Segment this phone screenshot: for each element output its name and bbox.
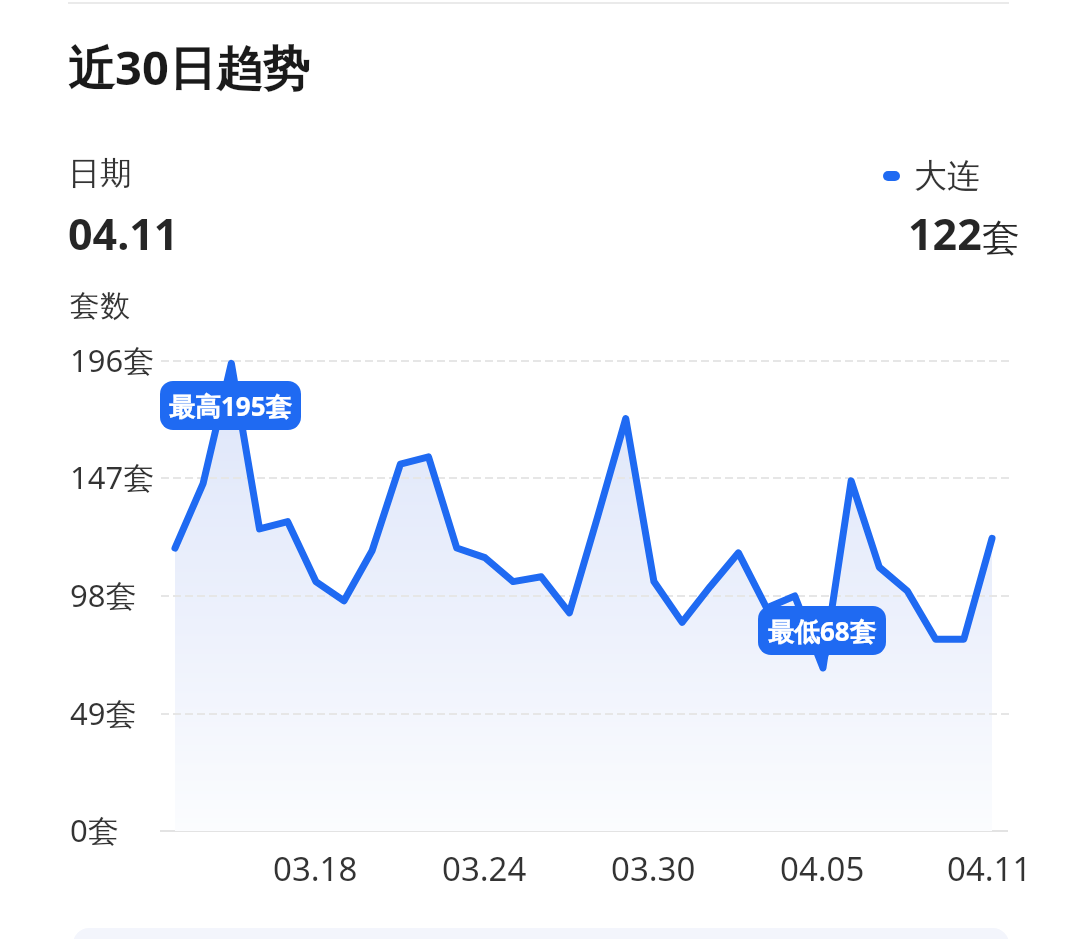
staticText: 套数 bbox=[70, 287, 130, 325]
staticText: 04.05 bbox=[780, 846, 865, 891]
staticText: 03.30 bbox=[611, 846, 696, 891]
button[interactable]: 大连 series colour bbox=[883, 155, 980, 197]
staticText: 196套 bbox=[70, 339, 155, 381]
other: 大连 series colour bbox=[883, 171, 900, 181]
staticText: 0套 bbox=[70, 809, 119, 851]
staticText: 04.11 bbox=[947, 846, 1032, 891]
staticText: 98套 bbox=[70, 574, 137, 616]
staticText: 大连 bbox=[914, 155, 980, 197]
button[interactable]: 最高195套 bbox=[160, 381, 301, 430]
staticText: 最低68套 bbox=[768, 613, 876, 649]
staticText: 套 bbox=[982, 214, 1020, 262]
staticText: 122 bbox=[908, 204, 982, 263]
staticText: 04.11 bbox=[68, 204, 179, 263]
staticText: 49套 bbox=[70, 692, 137, 734]
other: 近30日成交趋势折线图 bbox=[0, 0, 1080, 939]
staticText: 147套 bbox=[70, 456, 155, 498]
staticText: 最高195套 bbox=[169, 388, 292, 424]
staticText: 近30日趋势 bbox=[68, 35, 310, 99]
staticText: 03.18 bbox=[273, 846, 358, 891]
button[interactable]: 122 bbox=[908, 204, 1020, 263]
staticText: 日期 bbox=[68, 153, 132, 193]
button[interactable]: 日期 bbox=[62, 146, 282, 258]
staticText: 03.24 bbox=[442, 846, 527, 891]
button[interactable]: 最低68套 bbox=[758, 606, 886, 655]
